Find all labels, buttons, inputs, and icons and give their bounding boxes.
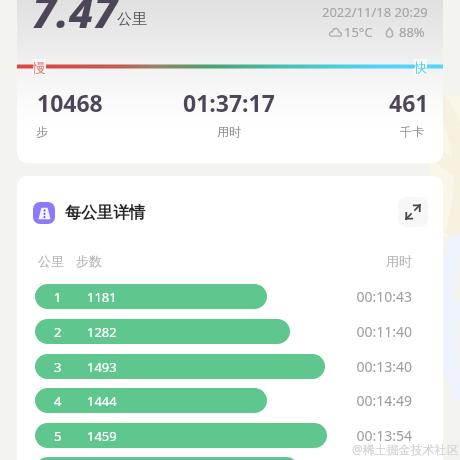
- staticText: 10468: [37, 87, 103, 118]
- staticText: 每公里详情: [65, 203, 145, 223]
- button[interactable]: Expand: [398, 197, 428, 227]
- staticText: 快: [414, 59, 427, 75]
- staticText: 步: [36, 124, 48, 139]
- staticText: 慢: [33, 59, 46, 75]
- staticText: 461: [389, 87, 429, 118]
- staticText: 00:13:54: [342, 426, 412, 445]
- staticText: 00:11:40: [342, 322, 412, 341]
- button[interactable]: 每公里详情: [33, 202, 145, 224]
- button[interactable]: 1: [35, 284, 415, 309]
- staticText: @稀土掘金技术社区: [352, 441, 459, 457]
- staticText: 1444: [87, 392, 117, 410]
- staticText: 5: [54, 427, 62, 445]
- button[interactable]: 3: [35, 354, 415, 379]
- button[interactable]: 5: [35, 423, 415, 448]
- staticText: 00:10:43: [342, 287, 412, 306]
- staticText: 4: [54, 392, 62, 410]
- staticText: 7.47: [32, 0, 118, 41]
- staticText: 01:37:17: [183, 87, 275, 118]
- staticText: 00:13:40: [342, 357, 412, 376]
- staticText: 15°C: [344, 23, 373, 41]
- staticText: 千卡: [400, 124, 424, 139]
- staticText: 00:14:49: [342, 391, 412, 410]
- staticText: 用时: [217, 124, 241, 139]
- staticText: 用时: [386, 253, 412, 269]
- staticText: 步数: [76, 253, 102, 269]
- button[interactable]: 6: [35, 457, 415, 460]
- staticText: 1282: [87, 323, 117, 341]
- staticText: 公里: [117, 10, 147, 29]
- staticText: 公里: [38, 253, 64, 269]
- button[interactable]: 2: [35, 319, 415, 344]
- staticText: 2022/11/18 20:29: [322, 3, 428, 21]
- staticText: 2: [54, 323, 62, 341]
- staticText: 1181: [87, 288, 117, 306]
- button[interactable]: 4: [35, 388, 415, 413]
- staticText: 1: [54, 288, 62, 306]
- staticText: 88%: [399, 23, 425, 41]
- staticText: 1459: [87, 427, 117, 445]
- staticText: 1493: [87, 358, 117, 376]
- staticText: 3: [54, 358, 62, 376]
